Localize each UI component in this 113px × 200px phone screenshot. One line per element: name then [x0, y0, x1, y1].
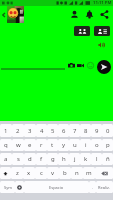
button[interactable]: w — [12, 139, 24, 151]
button[interactable]: x — [23, 167, 35, 179]
staticText: l — [96, 155, 98, 163]
staticText: w — [16, 141, 21, 149]
staticText: u — [73, 141, 77, 149]
staticText: t — [51, 141, 54, 149]
button[interactable]: d — [24, 153, 36, 165]
button[interactable]: Keyboard settings — [15, 181, 24, 193]
button[interactable]: 2 — [12, 124, 24, 137]
button[interactable]: 7 — [69, 124, 80, 137]
button[interactable]: Profile — [67, 6, 81, 23]
button[interactable]: Backspace — [95, 167, 113, 179]
staticText: p — [106, 141, 110, 149]
button[interactable]: 8 — [80, 124, 91, 137]
button[interactable]: 4 — [36, 124, 47, 137]
staticText: 5 — [51, 127, 55, 135]
button[interactable]: . — [89, 181, 96, 193]
staticText: f — [40, 155, 43, 163]
staticText: ñ — [106, 155, 110, 163]
staticText: j — [74, 155, 76, 163]
button[interactable]: i — [80, 139, 91, 151]
button[interactable]: q — [0, 139, 12, 151]
staticText: 3 — [28, 127, 32, 135]
button[interactable]: Share — [97, 6, 111, 23]
staticText: z — [16, 169, 19, 177]
button[interactable]: 3 — [24, 124, 36, 137]
staticText: 0 — [106, 127, 110, 135]
staticText: 6 — [62, 127, 66, 135]
staticText: s — [17, 155, 20, 163]
staticText: 2 — [16, 127, 20, 135]
button[interactable]: Shift — [0, 167, 11, 179]
button[interactable]: 6 — [58, 124, 69, 137]
button[interactable]: Realiz. — [96, 181, 113, 193]
button[interactable]: Notifications — [82, 6, 96, 23]
button[interactable]: u — [69, 139, 80, 151]
button[interactable]: Espacio — [24, 181, 89, 193]
staticText: q — [4, 141, 8, 149]
staticText: x — [27, 169, 31, 177]
button[interactable]: s — [12, 153, 24, 165]
button[interactable]: Emoji — [86, 61, 95, 70]
staticText: i — [85, 141, 87, 149]
button[interactable]: Group members — [74, 26, 90, 36]
button[interactable]: Back — [0, 6, 8, 23]
button[interactable]: z — [11, 167, 23, 179]
button[interactable]: 0 — [102, 124, 113, 137]
button[interactable]: Sym — [0, 181, 15, 193]
button[interactable]: a — [0, 153, 12, 165]
button[interactable]: j — [69, 153, 80, 165]
staticText: a — [4, 155, 8, 163]
staticText: b — [63, 169, 67, 177]
button[interactable]: Contact photo — [7, 6, 24, 23]
staticText: m — [86, 169, 92, 177]
staticText: Sym — [4, 185, 12, 190]
staticText: k — [84, 155, 88, 163]
staticText: . — [92, 185, 94, 190]
button[interactable]: b — [59, 167, 71, 179]
staticText: n — [75, 169, 79, 177]
staticText: d — [28, 155, 32, 163]
staticText: v — [51, 169, 55, 177]
staticText: y — [62, 141, 66, 149]
staticText: 8 — [84, 127, 88, 135]
button[interactable]: r — [36, 139, 47, 151]
button[interactable]: Camera — [67, 61, 76, 70]
staticText: 11:11 PM — [93, 0, 112, 6]
button[interactable]: k — [80, 153, 91, 165]
button[interactable]: ñ — [102, 153, 113, 165]
button[interactable]: t — [47, 139, 58, 151]
staticText: g — [51, 155, 55, 163]
button[interactable]: p — [102, 139, 113, 151]
staticText: 1 — [4, 127, 8, 135]
button[interactable]: g — [47, 153, 58, 165]
button[interactable]: Contact card — [94, 26, 110, 36]
button[interactable]: c — [35, 167, 47, 179]
button[interactable]: v — [47, 167, 59, 179]
staticText: o — [95, 141, 99, 149]
staticText: r — [40, 141, 43, 149]
button[interactable]: f — [36, 153, 47, 165]
staticText: Espacio — [49, 185, 64, 190]
button[interactable]: Send — [97, 60, 111, 74]
staticText: 4 — [40, 127, 44, 135]
button[interactable]: Video — [76, 61, 85, 70]
staticText: 9 — [95, 127, 99, 135]
staticText: h — [62, 155, 66, 163]
staticText: Realiz. — [98, 185, 111, 190]
button[interactable]: y — [58, 139, 69, 151]
button[interactable]: o — [91, 139, 102, 151]
staticText: 7 — [73, 127, 77, 135]
staticText: c — [40, 169, 43, 177]
button[interactable]: h — [58, 153, 69, 165]
button[interactable]: 1 — [0, 124, 12, 137]
staticText: e — [28, 141, 32, 149]
button[interactable]: 9 — [91, 124, 102, 137]
button[interactable]: 5 — [47, 124, 58, 137]
button[interactable]: l — [91, 153, 102, 165]
button[interactable]: Message — [0, 61, 66, 74]
button[interactable]: m — [83, 167, 95, 179]
button[interactable]: n — [71, 167, 83, 179]
button[interactable]: e — [24, 139, 36, 151]
button[interactable]: Volume — [96, 40, 105, 49]
